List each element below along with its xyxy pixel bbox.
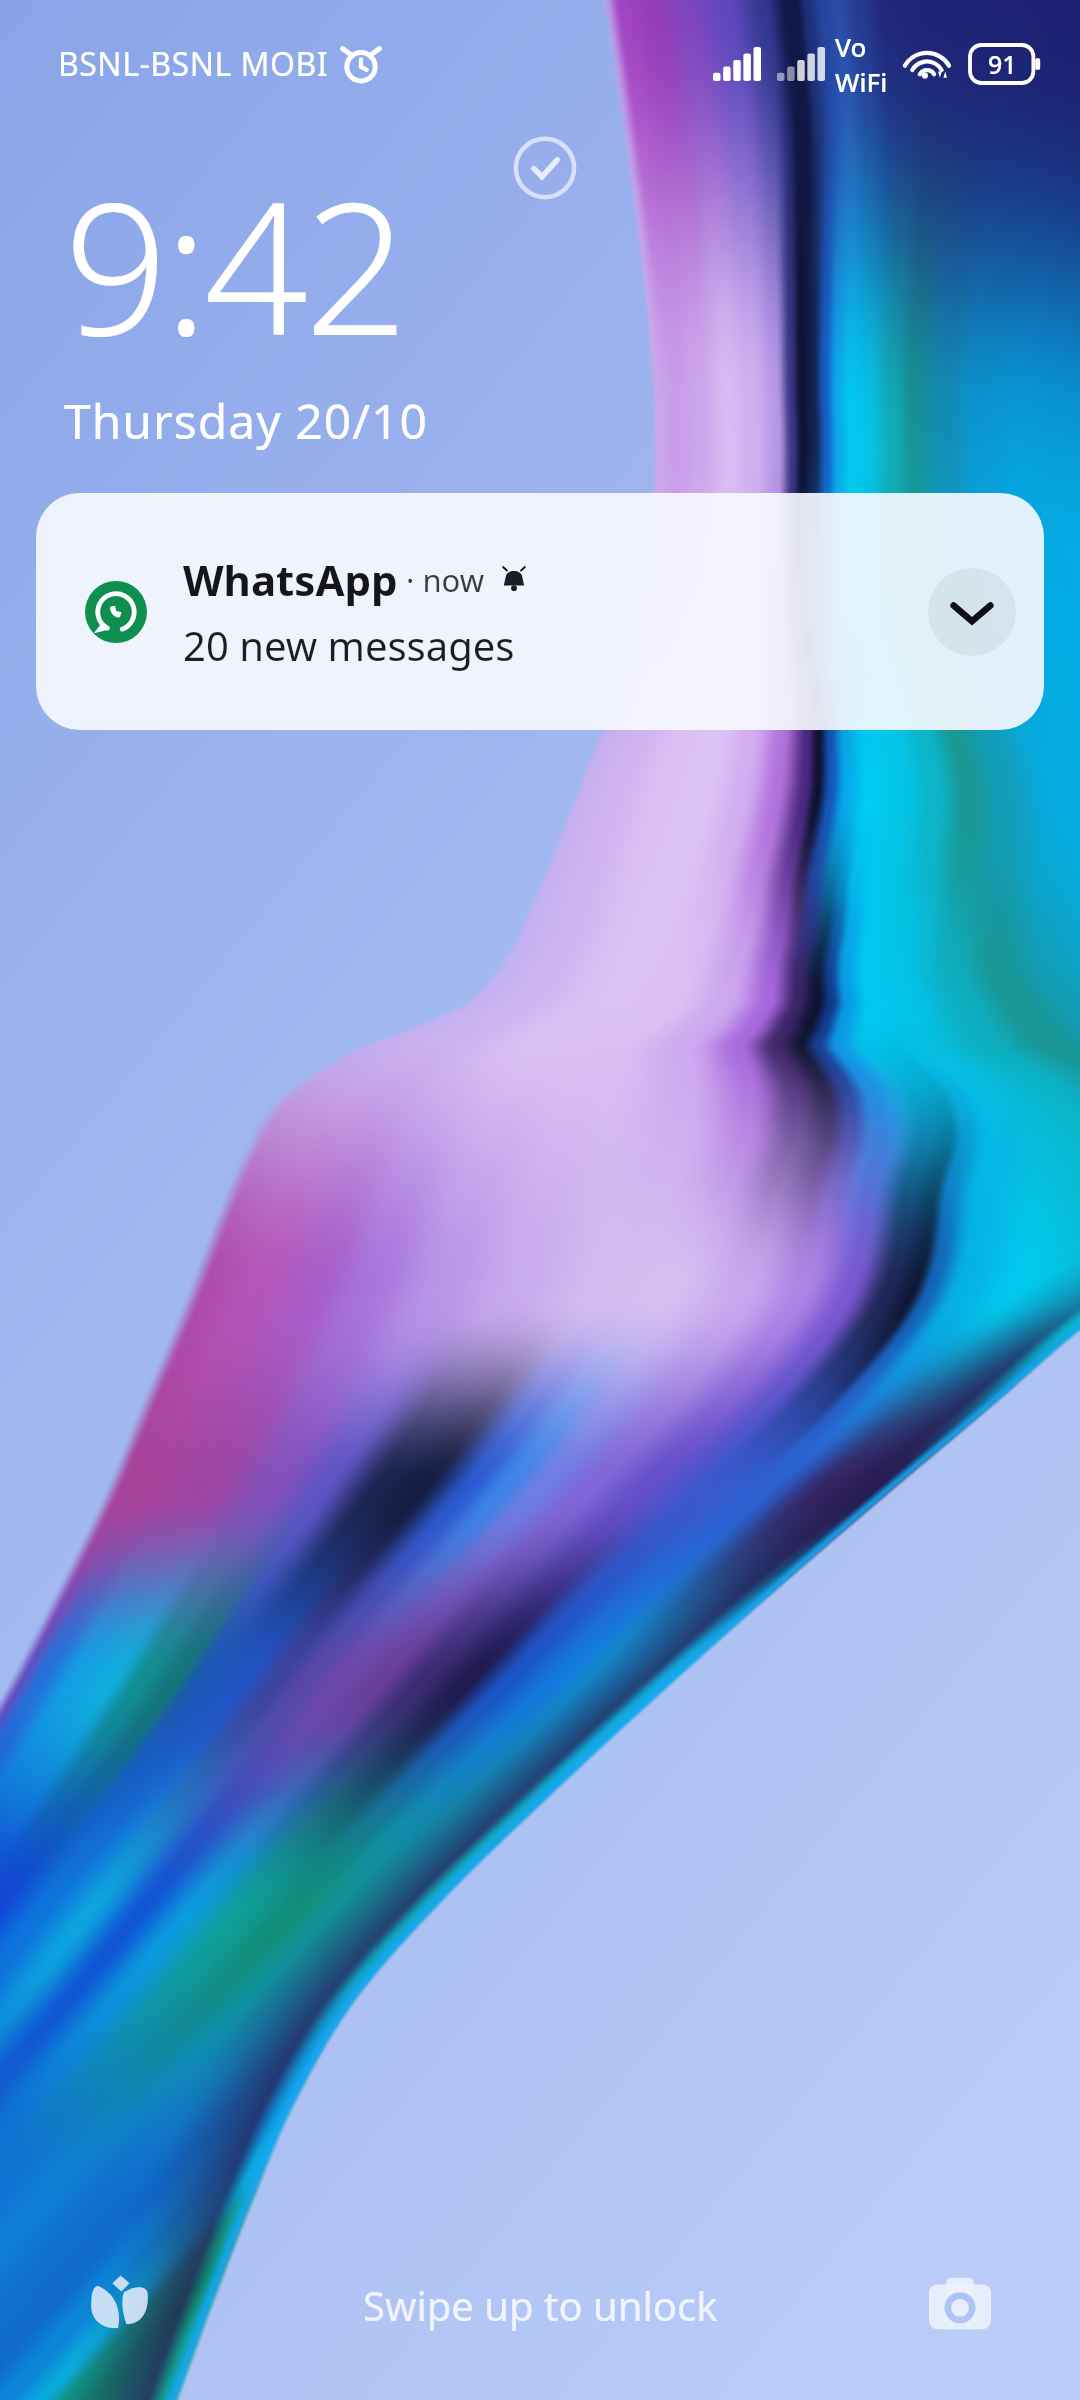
staticText: WiFi	[835, 64, 888, 99]
staticText: Thursday 20/10	[64, 388, 428, 453]
staticText: WhatsApp	[183, 551, 398, 608]
button[interactable]: Camera	[912, 2257, 1008, 2353]
staticText: BSNL-BSNL MOBI	[58, 42, 329, 86]
staticText: Swipe up to unlock	[363, 2278, 718, 2332]
staticText: 20 new messages	[183, 618, 515, 672]
button[interactable]: Face unlock	[513, 136, 577, 200]
staticText: Vo	[835, 29, 867, 64]
staticText: 91	[988, 47, 1017, 81]
button[interactable]: Expand notification	[928, 568, 1016, 656]
button[interactable]: Flashlight	[72, 2257, 168, 2353]
button[interactable]: WhatsApp	[36, 493, 1044, 730]
staticText: 9:42	[64, 140, 405, 388]
staticText: · now	[398, 559, 485, 601]
